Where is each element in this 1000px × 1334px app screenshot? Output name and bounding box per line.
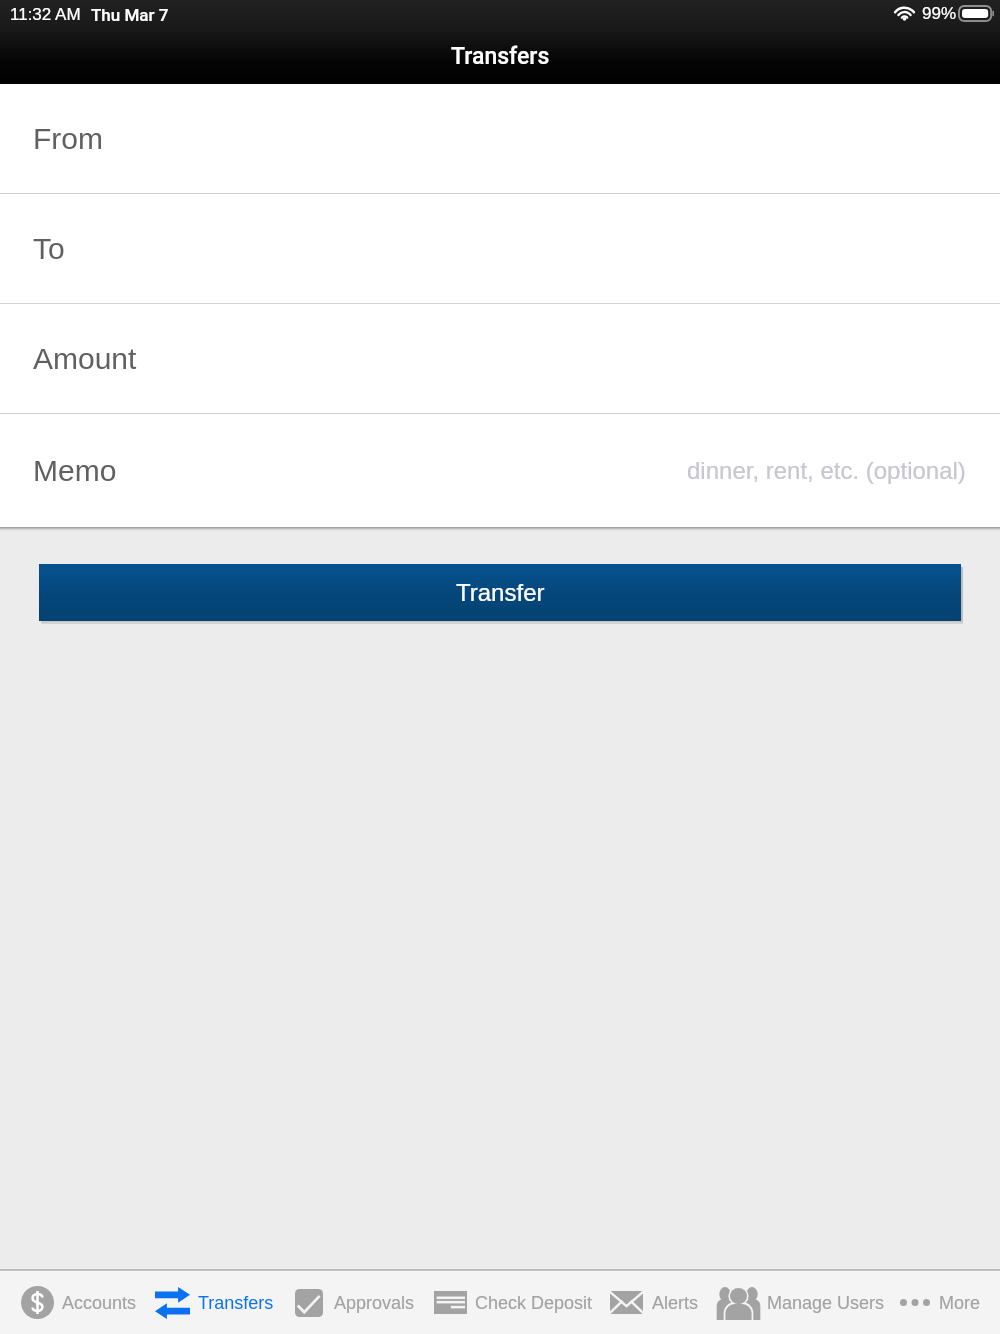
staticText: Approvals	[334, 1293, 415, 1313]
staticText: 99%	[922, 4, 957, 23]
staticText: 11:32 AM	[10, 5, 81, 24]
button[interactable]: To	[0, 194, 1000, 303]
other: Transfers	[155, 1287, 190, 1319]
staticText: Thu Mar 7	[91, 5, 169, 25]
staticText: From	[33, 122, 103, 156]
button[interactable]: Manage Users	[716, 1271, 889, 1334]
other: Check Deposit	[434, 1291, 467, 1314]
staticText: Transfer	[456, 579, 545, 606]
staticText: To	[33, 232, 65, 266]
button[interactable]: Transfers	[155, 1271, 280, 1334]
other: Manage Users	[716, 1285, 761, 1320]
staticText: Memo	[33, 454, 117, 488]
staticText: Transfers	[198, 1293, 274, 1313]
button[interactable]: Amount	[0, 304, 1000, 413]
button[interactable]: Alerts	[610, 1271, 704, 1334]
button[interactable]: Approvals	[295, 1271, 420, 1334]
staticText: Alerts	[652, 1293, 699, 1313]
other: Alerts	[610, 1291, 643, 1314]
staticText: Amount	[33, 342, 137, 376]
staticText: Manage Users	[767, 1293, 885, 1313]
other: Approvals	[295, 1289, 323, 1317]
button[interactable]: Check Deposit	[434, 1271, 597, 1334]
staticText: More	[939, 1293, 981, 1313]
staticText: Accounts	[62, 1293, 137, 1313]
button[interactable]: Memo	[0, 414, 1000, 527]
staticText: dinner, rent, etc. (optional)	[687, 457, 966, 484]
button[interactable]: Transfer	[39, 564, 961, 621]
button[interactable]: From	[0, 84, 1000, 193]
staticText: Check Deposit	[475, 1293, 593, 1313]
other: Accounts	[21, 1286, 54, 1319]
button[interactable]: More	[900, 1271, 985, 1334]
staticText: Transfers	[451, 43, 550, 70]
other: More	[900, 1299, 930, 1306]
button[interactable]: Accounts	[21, 1271, 142, 1334]
